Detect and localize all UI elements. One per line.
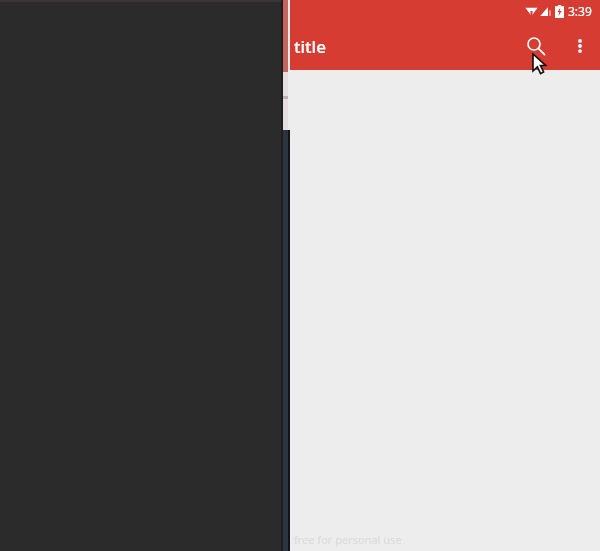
staticText: 3:39 <box>568 3 592 19</box>
staticText: free for personal use <box>294 532 402 547</box>
staticText: title <box>294 35 326 58</box>
button[interactable]: Search <box>512 22 560 70</box>
button[interactable]: More options <box>560 26 600 66</box>
